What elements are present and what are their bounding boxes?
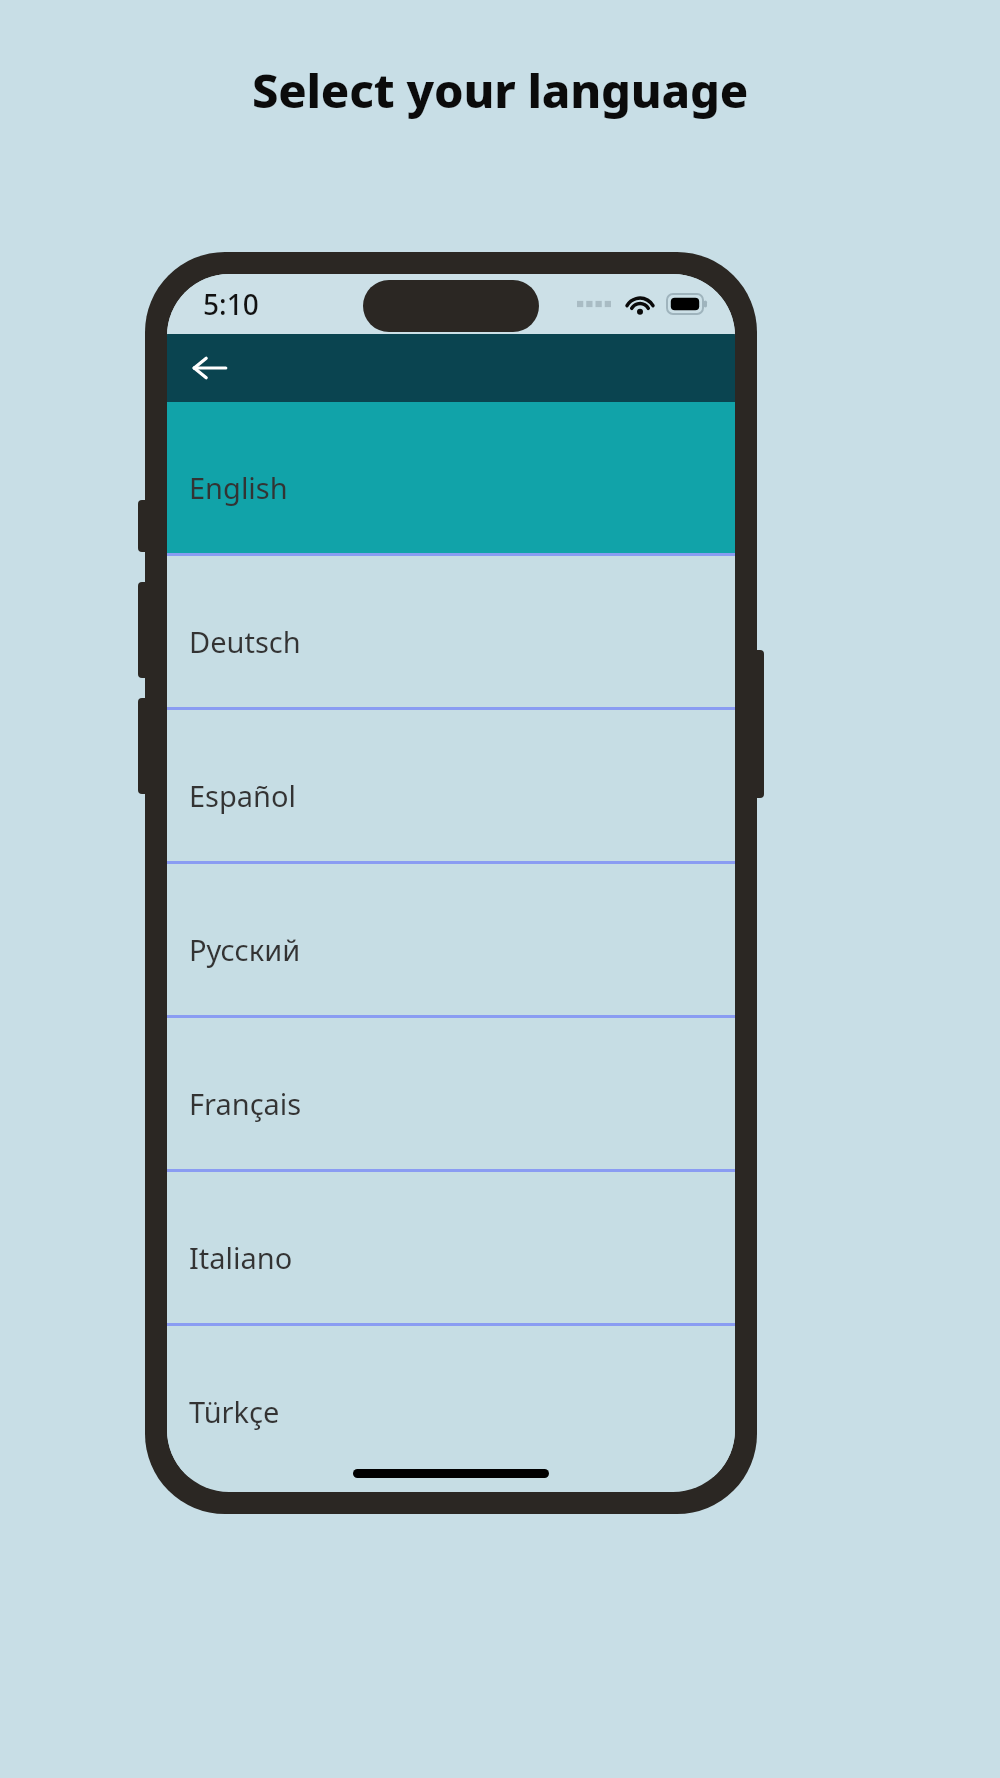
staticText: Español <box>189 776 297 815</box>
button[interactable]: English <box>167 402 735 553</box>
button[interactable]: Back <box>181 340 237 396</box>
button[interactable]: Français <box>167 1018 735 1169</box>
staticText: Türkçe <box>189 1392 280 1431</box>
staticText: Русский <box>189 930 301 969</box>
button[interactable]: Deutsch <box>167 556 735 707</box>
button[interactable]: Türkçe <box>167 1326 735 1477</box>
button[interactable]: Español <box>167 710 735 861</box>
button[interactable]: Русский <box>167 864 735 1015</box>
staticText: Deutsch <box>189 622 301 661</box>
staticText: Italiano <box>189 1238 293 1277</box>
button[interactable]: Italiano <box>167 1172 735 1323</box>
staticText: Français <box>189 1084 302 1123</box>
staticText: 5:10 <box>203 285 259 323</box>
staticText: English <box>189 468 288 507</box>
staticText: Select your language <box>0 58 1000 122</box>
